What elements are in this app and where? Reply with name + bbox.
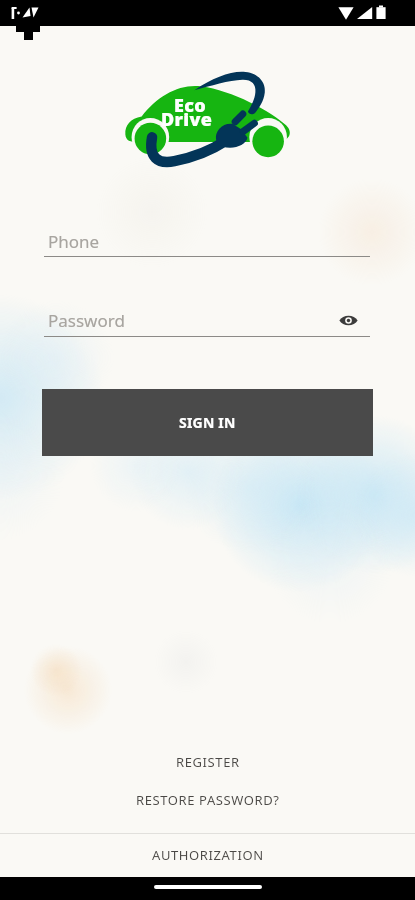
staticText: REGISTER (176, 753, 240, 771)
staticText: AUTHORIZATION (152, 846, 264, 864)
staticText: Phone (48, 230, 100, 253)
button[interactable]: RESTORE PASSWORD? (0, 786, 415, 814)
button[interactable]: Show password (338, 310, 358, 330)
staticText: SIGN IN (179, 413, 236, 432)
staticText: Password (48, 309, 125, 332)
button[interactable]: SIGN IN (42, 389, 373, 456)
staticText: Drive (161, 107, 213, 132)
staticText: RESTORE PASSWORD? (136, 791, 280, 809)
button[interactable]: AUTHORIZATION (0, 840, 415, 870)
button[interactable]: REGISTER (0, 748, 415, 776)
staticText: Eco (174, 93, 206, 118)
